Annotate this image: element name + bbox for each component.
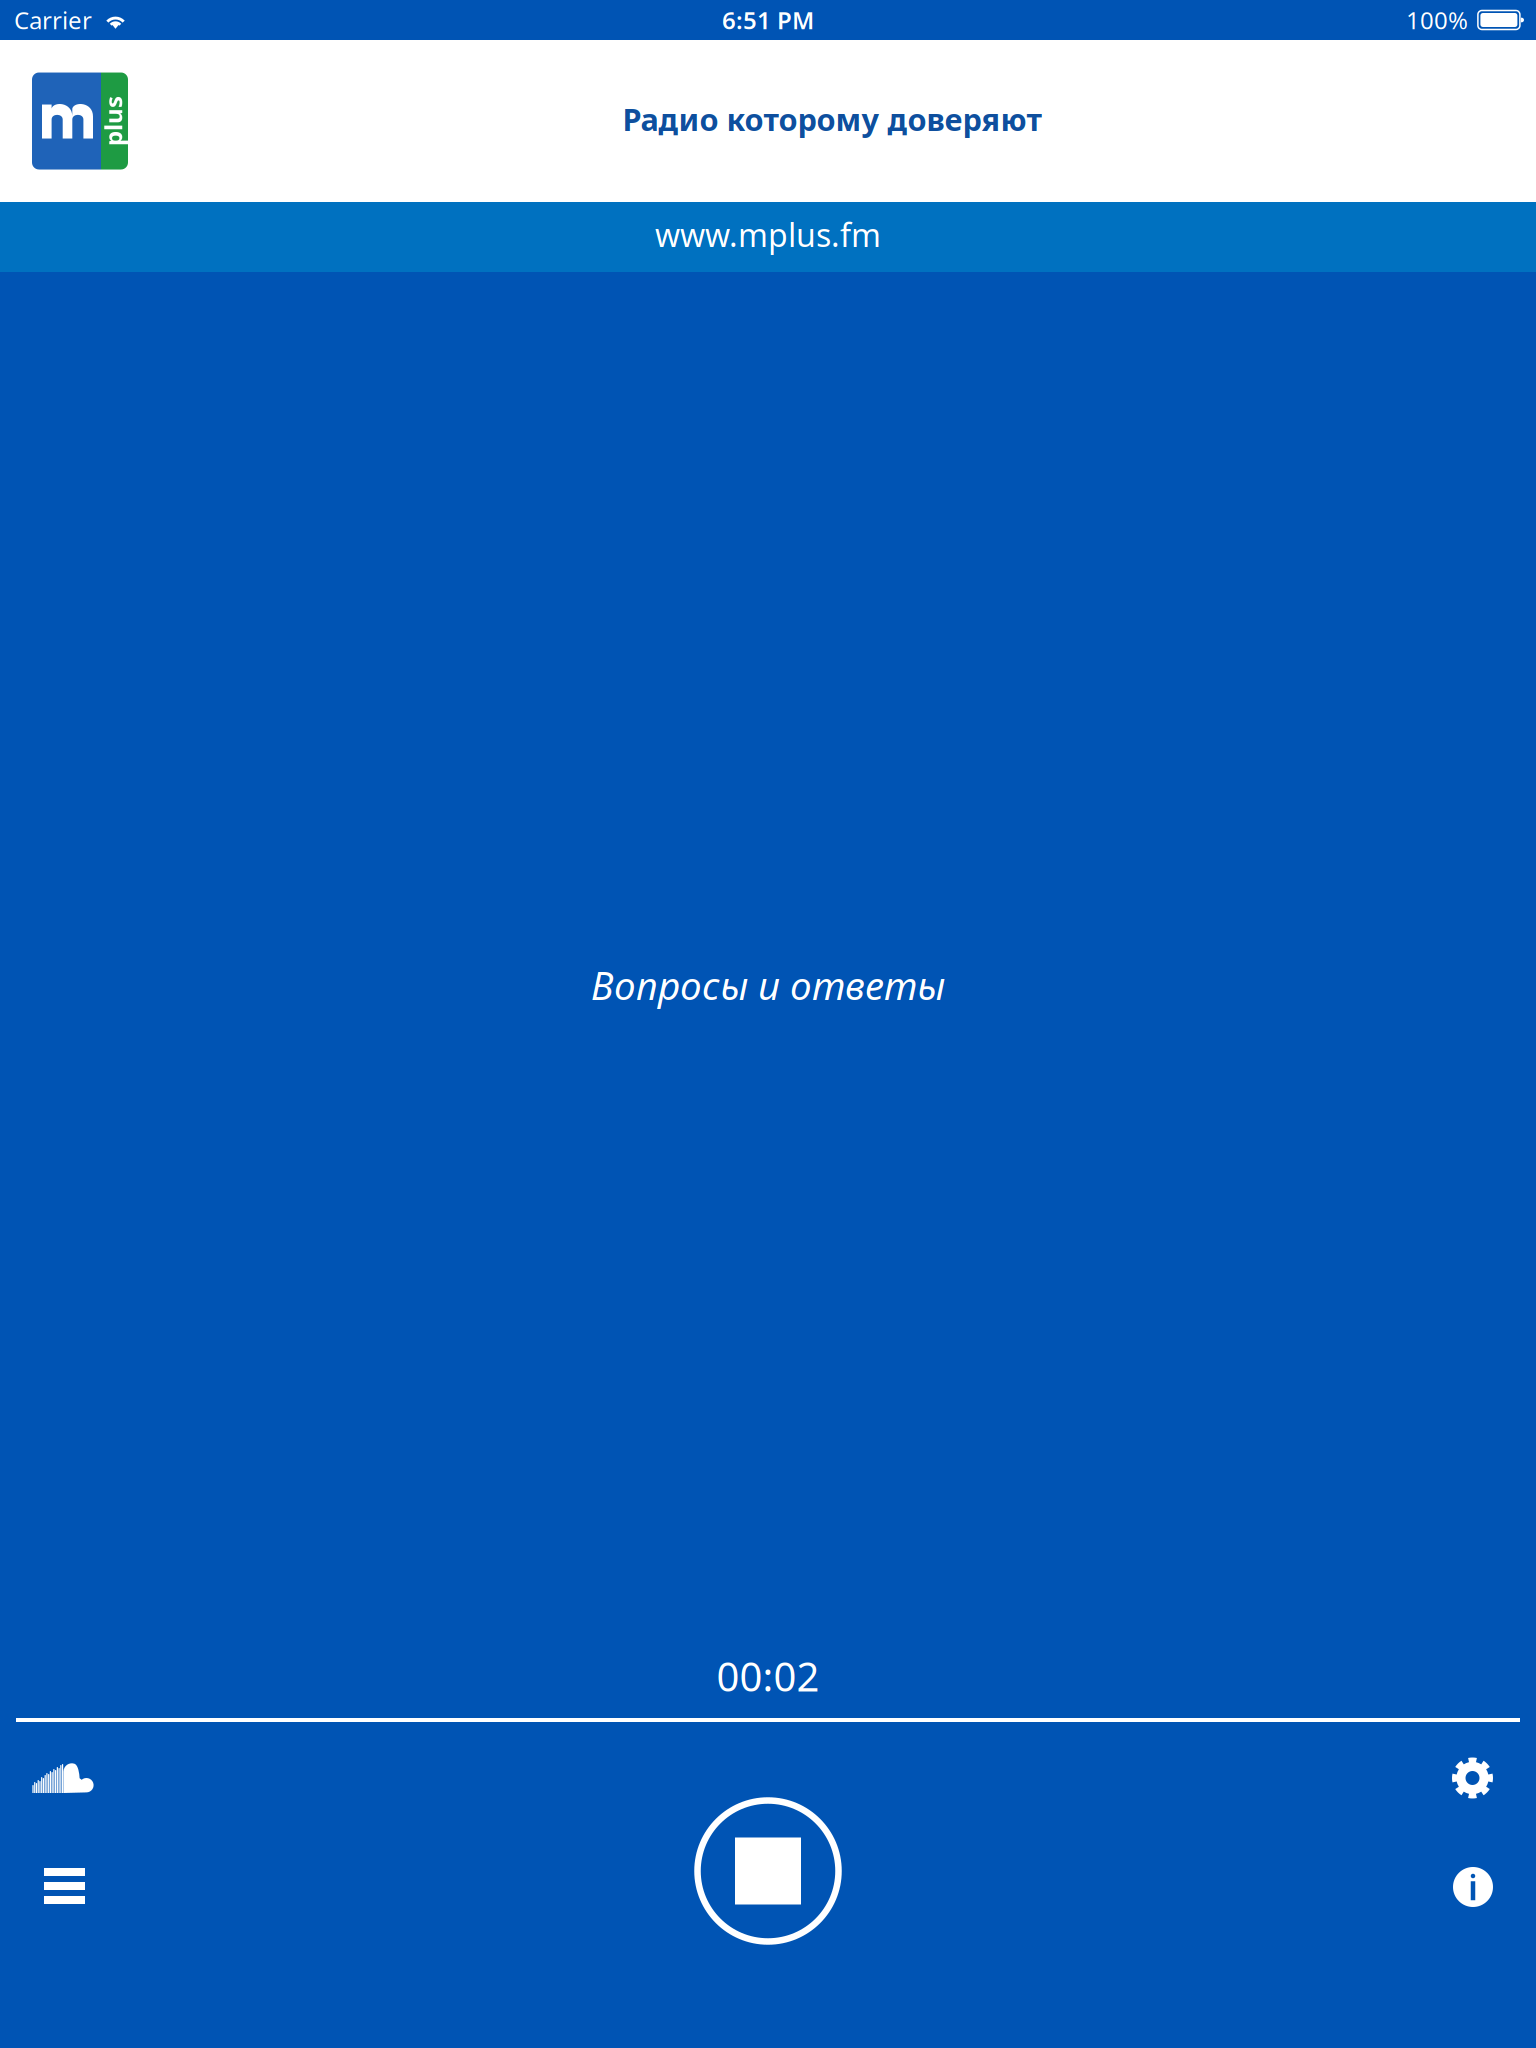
staticText: Carrier <box>14 4 92 36</box>
button[interactable]: www.mplus.fm <box>0 202 1536 272</box>
staticText: 00:02 <box>716 1649 819 1702</box>
staticText: 6:51 PM <box>722 4 814 36</box>
button[interactable]: Stop <box>688 1791 848 1951</box>
staticText: Радио которому доверяют <box>622 99 1041 139</box>
staticText: www.mplus.fm <box>655 213 881 256</box>
button[interactable]: mplus <box>0 72 128 169</box>
staticText: plus <box>88 105 138 137</box>
staticText: Вопросы и ответы <box>591 959 945 1011</box>
button[interactable]: Settings <box>1429 1750 1493 1806</box>
staticText: 100% <box>1406 4 1468 36</box>
button[interactable]: Info <box>1429 1865 1493 1909</box>
button[interactable]: SoundCloud <box>32 1750 128 1806</box>
button[interactable]: Menu <box>32 1861 140 1911</box>
